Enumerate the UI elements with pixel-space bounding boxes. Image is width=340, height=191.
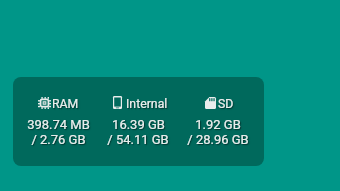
staticText: / 28.96 GB [187,132,249,147]
staticText: 398.74 MB [27,117,90,132]
staticText: 16.39 GB [112,117,165,132]
staticText: RAM [52,97,79,111]
staticText: Internal [126,97,168,111]
button[interactable]: RAM [13,77,264,166]
staticText: 1.92 GB [195,117,241,132]
staticText: / 2.76 GB [31,132,86,147]
staticText: / 54.11 GB [107,132,169,147]
staticText: SD [218,97,234,111]
